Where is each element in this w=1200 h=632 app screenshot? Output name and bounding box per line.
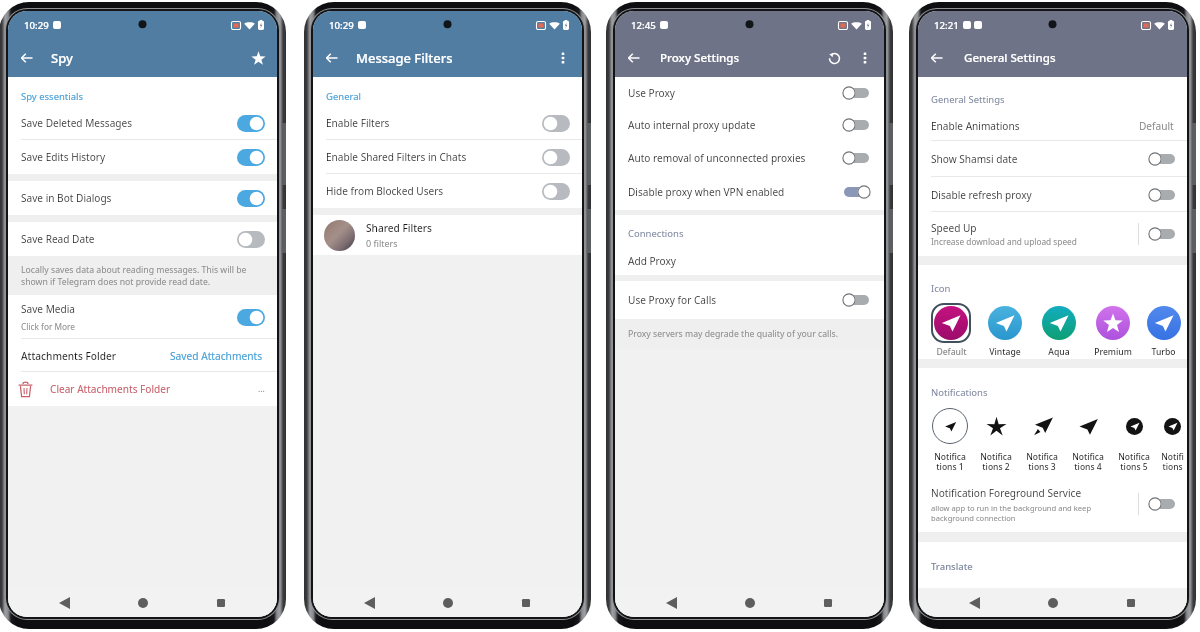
staticText: Shared Filters	[366, 221, 433, 235]
button[interactable]: Notifica tions 1	[927, 408, 973, 472]
button[interactable]: Back	[661, 593, 681, 613]
button[interactable]: Notifica tions 5	[1111, 408, 1157, 472]
button[interactable]: Home	[740, 593, 760, 613]
button[interactable]: Attachments Folder	[8, 339, 277, 372]
button[interactable]	[237, 115, 265, 132]
button[interactable]	[237, 190, 265, 207]
staticText: General Settings	[931, 93, 1005, 106]
button[interactable]	[237, 149, 265, 166]
staticText: General	[326, 90, 362, 103]
staticText: Connections	[628, 227, 684, 240]
button[interactable]: Back	[621, 45, 647, 71]
staticText: Save Edits History	[21, 150, 106, 164]
button[interactable]	[237, 309, 265, 326]
button[interactable]: Save Read Date	[8, 222, 277, 256]
button[interactable]: Default	[924, 303, 978, 358]
button[interactable]: Shared Filters	[313, 215, 582, 255]
button[interactable]	[542, 149, 570, 166]
staticText: Show Shamsi date	[931, 152, 1018, 166]
staticText: Saved Attachments	[170, 349, 263, 363]
button[interactable]: Notification Foreground Service	[918, 476, 1187, 532]
staticText: 10:29	[329, 19, 354, 32]
staticText: Enable Animations	[931, 119, 1020, 133]
button[interactable]: Show Shamsi date	[918, 141, 1187, 177]
staticText: Spy	[51, 49, 73, 67]
button[interactable]: Back	[924, 45, 950, 71]
button[interactable]: Enable Filters	[313, 106, 582, 140]
button[interactable]: Use Proxy	[615, 77, 884, 108]
button[interactable]: Save Deleted Messages	[8, 106, 277, 140]
staticText: Enable Filters	[326, 116, 390, 130]
button[interactable]: Notifica tions 2	[973, 408, 1019, 472]
button[interactable]: Recent apps	[1121, 593, 1141, 613]
staticText: allow app to run in the background and k…	[931, 503, 1092, 523]
button[interactable]: Add Proxy	[615, 246, 884, 275]
button[interactable]: Home	[438, 593, 458, 613]
button[interactable]	[542, 183, 570, 200]
staticText: Hide from Blocked Users	[326, 184, 444, 198]
staticText: Notifications	[931, 386, 988, 399]
button[interactable]: Save Media	[8, 295, 277, 339]
button[interactable]: Save Edits History	[8, 140, 277, 174]
staticText: General Settings	[964, 50, 1056, 66]
button[interactable]: Aqua	[1032, 303, 1086, 358]
button[interactable]	[844, 86, 869, 100]
staticText: 12:21	[934, 19, 959, 32]
staticText: Notifica tions 1	[934, 451, 966, 472]
button[interactable]: Turbo	[1140, 303, 1187, 358]
button[interactable]: Clear Attachments Folder	[8, 372, 277, 406]
button[interactable]	[844, 151, 869, 165]
button[interactable]: Back	[319, 45, 345, 71]
button[interactable]: Enable Shared Filters in Chats	[313, 140, 582, 174]
button[interactable]: Recent apps	[211, 593, 231, 613]
button[interactable]: Speed Up	[918, 212, 1187, 256]
button[interactable]	[1150, 188, 1175, 202]
button[interactable]: Vintage	[978, 303, 1032, 358]
button[interactable]	[844, 293, 869, 307]
staticText: Use Proxy	[628, 86, 675, 100]
button[interactable]: Notifi tions	[1157, 408, 1187, 472]
button[interactable]: Favorite	[245, 45, 271, 71]
button[interactable]: Recent apps	[818, 593, 838, 613]
staticText: Message Filters	[356, 49, 453, 67]
button[interactable]: Back	[964, 593, 984, 613]
button[interactable]: Notifica tions 3	[1019, 408, 1065, 472]
button[interactable]: Save in Bot Dialogs	[8, 181, 277, 215]
button[interactable]: Notifica tions 4	[1065, 408, 1111, 472]
button[interactable]: Use Proxy for Calls	[615, 281, 884, 319]
staticText: Proxy servers may degrade the quality of…	[628, 328, 839, 340]
staticText: Notifica tions 5	[1118, 451, 1150, 472]
button[interactable]: Home	[1043, 593, 1063, 613]
button[interactable]	[844, 185, 869, 199]
button[interactable]: Recent apps	[516, 593, 536, 613]
button[interactable]: Back	[54, 593, 74, 613]
staticText: Default	[936, 346, 967, 358]
staticText: Attachments Folder	[21, 349, 117, 363]
staticText: Spy essentials	[21, 90, 84, 103]
button[interactable]: Hide from Blocked Users	[313, 174, 582, 208]
button[interactable]: More options	[550, 45, 576, 71]
button[interactable]: Disable refresh proxy	[918, 177, 1187, 212]
button[interactable]	[542, 115, 570, 132]
button[interactable]: Auto internal proxy update	[615, 108, 884, 141]
button[interactable]	[844, 118, 869, 132]
staticText: Increase download and upload speed	[931, 236, 1077, 247]
button[interactable]: Back	[14, 45, 40, 71]
button[interactable]: Auto removal of unconnected proxies	[615, 141, 884, 174]
staticText: Vintage	[989, 346, 1021, 358]
staticText: Notification Foreground Service	[931, 486, 1082, 500]
button[interactable]	[1150, 152, 1175, 166]
button[interactable]: Refresh	[821, 45, 847, 71]
button[interactable]: Disable proxy when VPN enabled	[615, 174, 884, 210]
staticText: Disable refresh proxy	[931, 188, 1032, 202]
button[interactable]: Enable Animations	[918, 111, 1187, 141]
staticText: Auto internal proxy update	[628, 118, 756, 132]
button[interactable]	[237, 231, 265, 248]
button[interactable]: Premium	[1086, 303, 1140, 358]
button[interactable]: Back	[359, 593, 379, 613]
button[interactable]	[1150, 497, 1175, 511]
button[interactable]: Home	[133, 593, 153, 613]
button[interactable]	[1150, 227, 1175, 241]
staticText: Notifi tions	[1161, 451, 1184, 472]
button[interactable]: More options	[852, 45, 878, 71]
